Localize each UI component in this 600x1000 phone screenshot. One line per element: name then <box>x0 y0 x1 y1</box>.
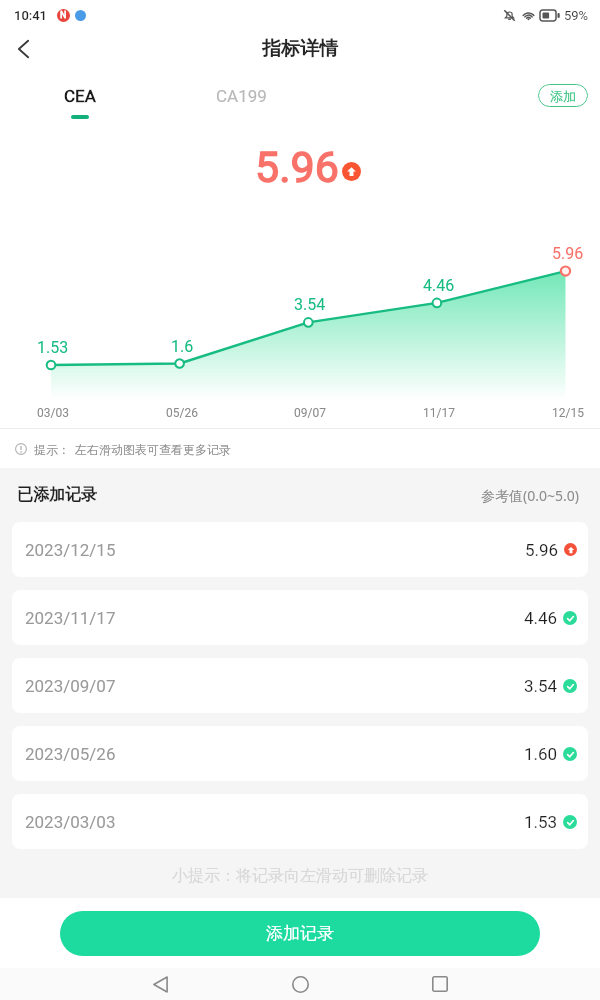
button[interactable]: CEA <box>64 86 96 119</box>
staticText: 05/26 <box>166 406 198 420</box>
button[interactable]: 2023/09/07 <box>12 658 588 713</box>
staticText: 1.53 <box>524 812 558 832</box>
staticText: 1.53 <box>37 338 69 357</box>
button[interactable]: CA199 <box>216 86 267 106</box>
button[interactable]: 2023/03/03 <box>12 794 588 849</box>
staticText: 4.46 <box>524 608 558 628</box>
button[interactable]: Back <box>144 968 176 1000</box>
staticText: 左右滑动图表可查看更多记录 <box>75 442 231 457</box>
staticText: 5.96 <box>525 540 559 560</box>
staticText: 2023/09/07 <box>25 676 116 696</box>
staticText: 03/03 <box>37 406 69 420</box>
staticText: 4.46 <box>423 276 455 295</box>
button[interactable]: Home <box>284 968 316 1000</box>
staticText: CEA <box>64 86 96 106</box>
staticText: 1.6 <box>171 337 194 356</box>
staticText: 参考值(0.0~5.0) <box>481 486 579 505</box>
staticText: 59% <box>564 8 589 23</box>
staticText: 已添加记录 <box>17 485 97 505</box>
staticText: 添加 <box>550 88 576 104</box>
staticText: 2023/03/03 <box>25 812 116 832</box>
button[interactable]: 2023/12/15 <box>12 522 588 577</box>
button[interactable]: Back <box>0 31 46 67</box>
staticText: 3.54 <box>524 676 558 696</box>
staticText: 10:41 <box>14 8 48 23</box>
button[interactable]: 2023/11/17 <box>12 590 588 645</box>
staticText: 提示： <box>34 442 70 457</box>
staticText: 2023/12/15 <box>25 540 116 560</box>
button[interactable]: 2023/05/26 <box>12 726 588 781</box>
staticText: 2023/11/17 <box>25 608 116 628</box>
staticText: 09/07 <box>294 406 326 420</box>
staticText: 小提示：将记录向左滑动可删除记录 <box>0 866 600 886</box>
staticText: 5.96 <box>552 244 584 263</box>
staticText: 1.60 <box>524 744 558 764</box>
staticText: 5.96 <box>255 142 339 192</box>
button[interactable]: Recents <box>424 968 456 1000</box>
button[interactable]: 添加记录 <box>60 911 540 956</box>
staticText: 2023/05/26 <box>25 744 116 764</box>
staticText: 12/15 <box>552 406 584 420</box>
button[interactable]: 添加 <box>538 84 588 107</box>
staticText: 指标详情 <box>262 37 338 61</box>
staticText: 添加记录 <box>266 923 334 944</box>
staticText: 3.54 <box>294 295 326 314</box>
staticText: N <box>60 10 67 21</box>
staticText: 11/17 <box>423 406 455 420</box>
